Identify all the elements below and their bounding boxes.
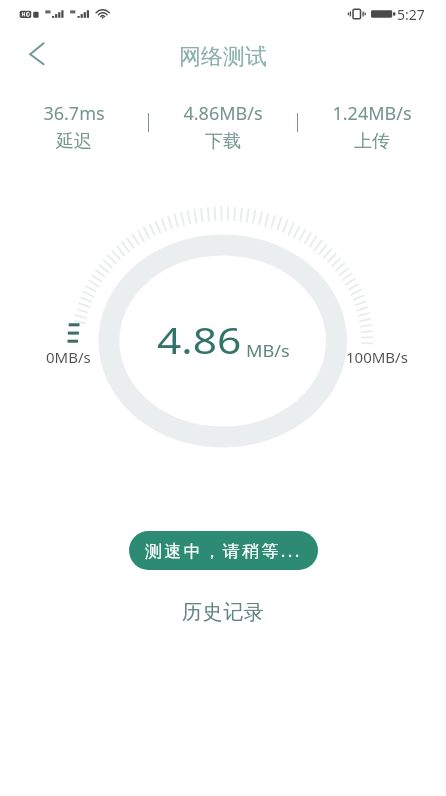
staticText: 测速中，请稍等... bbox=[145, 539, 302, 562]
button[interactable]: Back bbox=[17, 36, 53, 72]
button[interactable]: 1.24MB/s bbox=[297, 101, 446, 153]
staticText: 网络测试 bbox=[179, 43, 267, 71]
button[interactable]: 4.86MB/s bbox=[148, 101, 297, 153]
button[interactable]: 36.7ms bbox=[0, 101, 148, 153]
staticText: 1.24MB/s bbox=[332, 101, 412, 126]
staticText: 下载 bbox=[205, 130, 241, 153]
staticText: 4.86 bbox=[157, 316, 242, 365]
staticText: 5:27 bbox=[397, 5, 425, 24]
button[interactable]: 历史记录 bbox=[164, 595, 283, 630]
staticText: 0MB/s bbox=[46, 347, 91, 367]
staticText: 延迟 bbox=[56, 130, 92, 153]
staticText: 历史记录 bbox=[182, 600, 265, 625]
staticText: 100MB/s bbox=[346, 347, 408, 367]
staticText: 上传 bbox=[354, 130, 390, 153]
button[interactable]: 测速中，请稍等... bbox=[129, 531, 318, 570]
staticText: 4.86MB/s bbox=[183, 101, 263, 126]
staticText: 36.7ms bbox=[43, 101, 105, 126]
staticText: MB/s bbox=[246, 339, 290, 362]
